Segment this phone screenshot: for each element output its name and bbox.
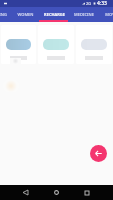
button[interactable]: MOVIES — [98, 7, 113, 22]
staticText: 2G — [86, 1, 92, 6]
staticText: SHOPPING — [0, 12, 7, 17]
staticText: RECHARGE — [44, 12, 65, 17]
staticText: WOMEN — [17, 12, 34, 17]
button[interactable]: RECHARGE — [40, 7, 69, 22]
button[interactable]: SHOPPING — [0, 7, 11, 22]
button[interactable]: Back — [17, 185, 33, 200]
button[interactable]: Back — [90, 145, 107, 162]
button[interactable]: WOMEN — [11, 7, 40, 22]
button[interactable] — [1, 25, 36, 64]
button[interactable]: MEDICINE — [69, 7, 98, 22]
button[interactable] — [76, 25, 112, 64]
staticText: MEDICINE — [74, 12, 94, 17]
staticText: MOVIES — [105, 12, 113, 17]
staticText: 4:33 — [97, 0, 107, 7]
button[interactable]: Home — [48, 185, 64, 200]
button[interactable] — [38, 25, 74, 64]
button[interactable]: Recent apps — [79, 185, 95, 200]
